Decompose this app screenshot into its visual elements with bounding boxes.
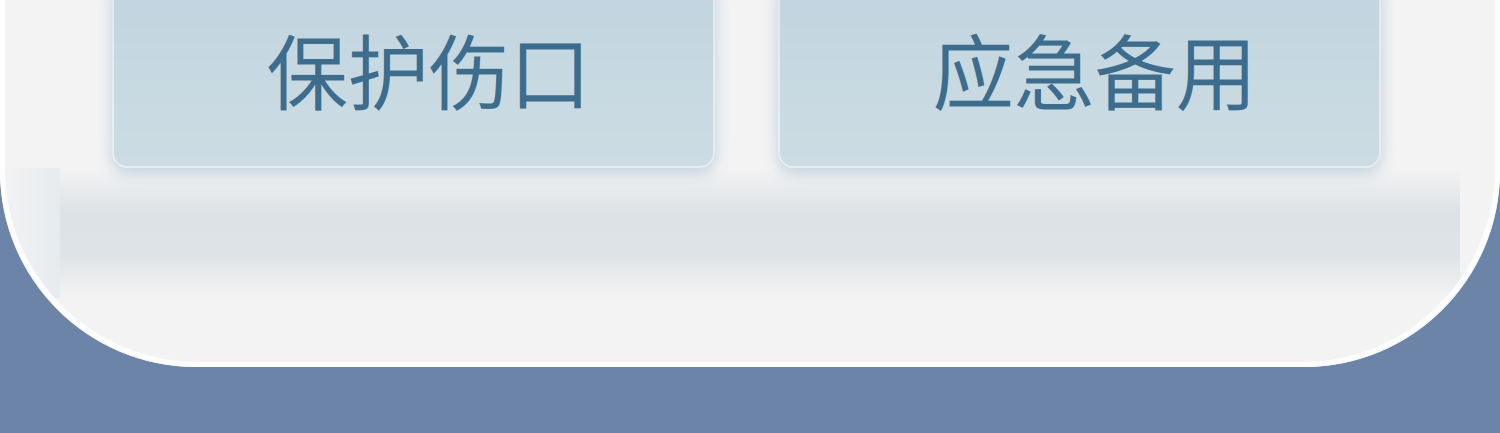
- staticText: 应急备用: [932, 9, 1256, 127]
- staticText: 保护伤口: [266, 9, 590, 127]
- button[interactable]: 应急备用: [778, 0, 1381, 168]
- button[interactable]: 保护伤口: [112, 0, 715, 168]
